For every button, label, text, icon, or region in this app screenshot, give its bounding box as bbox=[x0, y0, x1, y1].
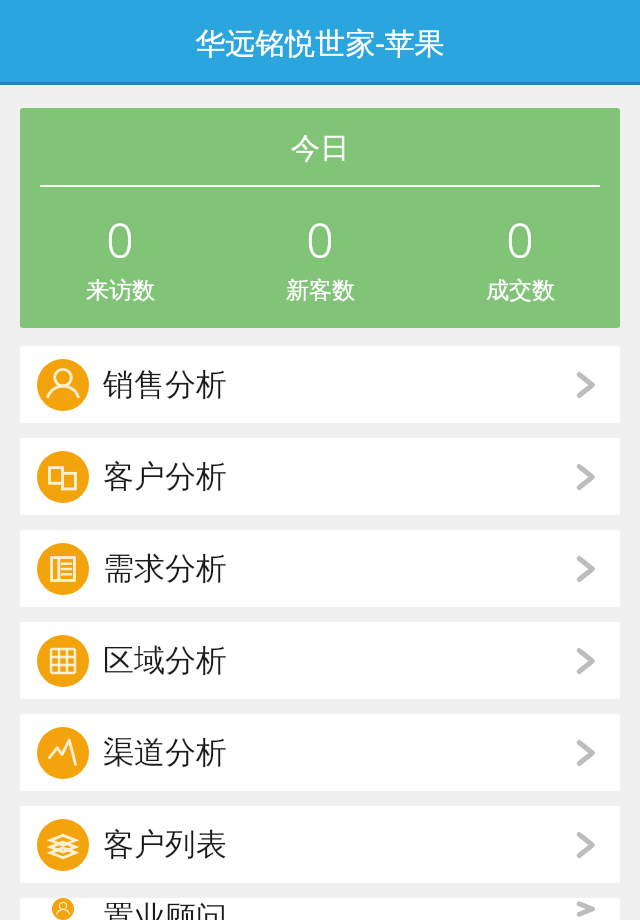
staticText: 需求分析 bbox=[103, 549, 566, 588]
other: 客户列表 bbox=[37, 819, 89, 871]
staticText: 渠道分析 bbox=[103, 733, 566, 772]
button[interactable]: 销售分析 bbox=[20, 346, 620, 423]
other: 销售分析 bbox=[37, 359, 89, 411]
staticText: 区域分析 bbox=[103, 641, 566, 680]
button[interactable]: 客户列表 bbox=[20, 806, 620, 883]
staticText: 客户分析 bbox=[103, 457, 566, 496]
button[interactable]: 客户分析 bbox=[20, 438, 620, 515]
button[interactable]: 渠道分析 bbox=[20, 714, 620, 791]
staticText: 成交数 bbox=[486, 276, 555, 305]
button[interactable]: 需求分析 bbox=[20, 530, 620, 607]
staticText: 新客数 bbox=[286, 276, 355, 305]
staticText: 来访数 bbox=[86, 276, 155, 305]
button[interactable]: 今日 bbox=[20, 108, 620, 328]
other: 需求分析 bbox=[37, 543, 89, 595]
other: 客户分析 bbox=[37, 451, 89, 503]
button[interactable]: 区域分析 bbox=[20, 622, 620, 699]
staticText: 销售分析 bbox=[103, 365, 566, 404]
staticText: 今日 bbox=[20, 130, 620, 167]
staticText: 0 bbox=[106, 207, 134, 272]
button[interactable]: 置业顾问 bbox=[20, 898, 620, 920]
staticText: 0 bbox=[506, 207, 534, 272]
staticText: 0 bbox=[306, 207, 334, 272]
staticText: 华远铭悦世家-苹果 bbox=[195, 22, 445, 63]
other: 区域分析 bbox=[37, 635, 89, 687]
staticText: 客户列表 bbox=[103, 825, 566, 864]
other: 置业顾问 bbox=[37, 898, 89, 920]
staticText: 置业顾问 bbox=[103, 898, 566, 920]
other: 渠道分析 bbox=[37, 727, 89, 779]
